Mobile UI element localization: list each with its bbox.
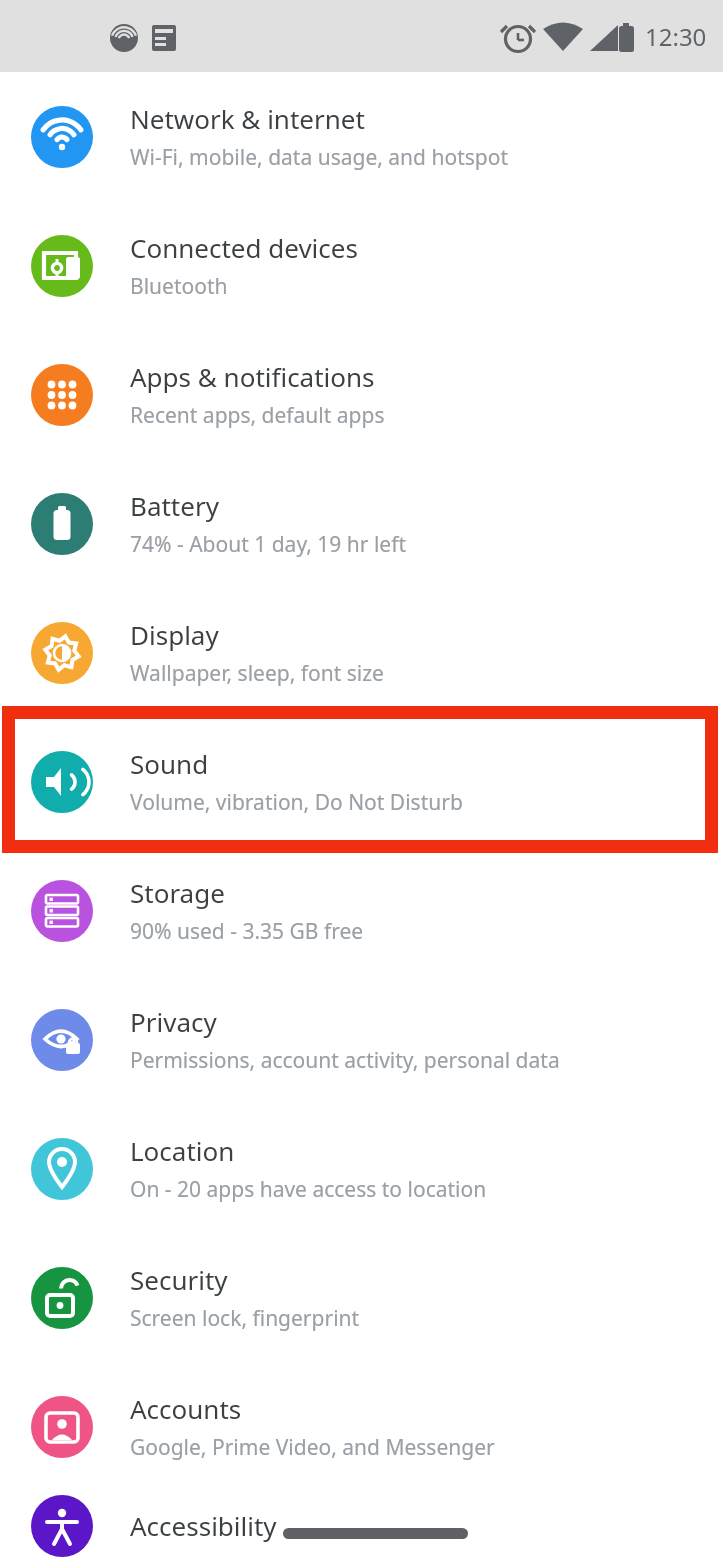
staticText: On - 20 apps have access to location [130, 1175, 487, 1204]
staticText: Wallpaper, sleep, font size [130, 659, 384, 688]
button[interactable]: Accounts [0, 1362, 723, 1491]
staticText: Google, Prime Video, and Messenger [130, 1433, 495, 1462]
button[interactable]: Privacy [0, 975, 723, 1104]
staticText: Apps & notifications [130, 359, 375, 394]
button[interactable]: Security [0, 1233, 723, 1362]
button[interactable]: Location [0, 1104, 723, 1233]
staticText: Wi-Fi, mobile, data usage, and hotspot [130, 143, 508, 172]
staticText: 90% used - 3.35 GB free [130, 917, 364, 946]
button[interactable]: Network & internet [0, 72, 723, 201]
staticText: Recent apps, default apps [130, 401, 385, 430]
button[interactable]: Sound [0, 717, 723, 846]
staticText: Network & internet [130, 101, 365, 136]
button[interactable]: Accessibility [0, 1491, 723, 1560]
staticText: Permissions, account activity, personal … [130, 1046, 560, 1075]
staticText: Bluetooth [130, 272, 228, 301]
staticText: Security [130, 1262, 228, 1297]
button[interactable]: Display [0, 588, 723, 717]
staticText: Privacy [130, 1004, 217, 1039]
staticText: Volume, vibration, Do Not Disturb [130, 788, 463, 817]
staticText: Storage [130, 875, 225, 910]
staticText: Display [130, 617, 219, 652]
staticText: Accounts [130, 1391, 242, 1426]
button[interactable]: Battery [0, 459, 723, 588]
staticText: Screen lock, fingerprint [130, 1304, 360, 1333]
button[interactable]: Apps & notifications [0, 330, 723, 459]
staticText: Battery [130, 488, 219, 523]
staticText: 12:30 [645, 20, 707, 53]
staticText: 74% - About 1 day, 19 hr left [130, 530, 407, 559]
button[interactable]: Storage [0, 846, 723, 975]
staticText: Location [130, 1133, 235, 1168]
staticText: Connected devices [130, 230, 358, 265]
staticText: Sound [130, 746, 209, 781]
button[interactable]: Connected devices [0, 201, 723, 330]
staticText: Accessibility [130, 1508, 277, 1543]
